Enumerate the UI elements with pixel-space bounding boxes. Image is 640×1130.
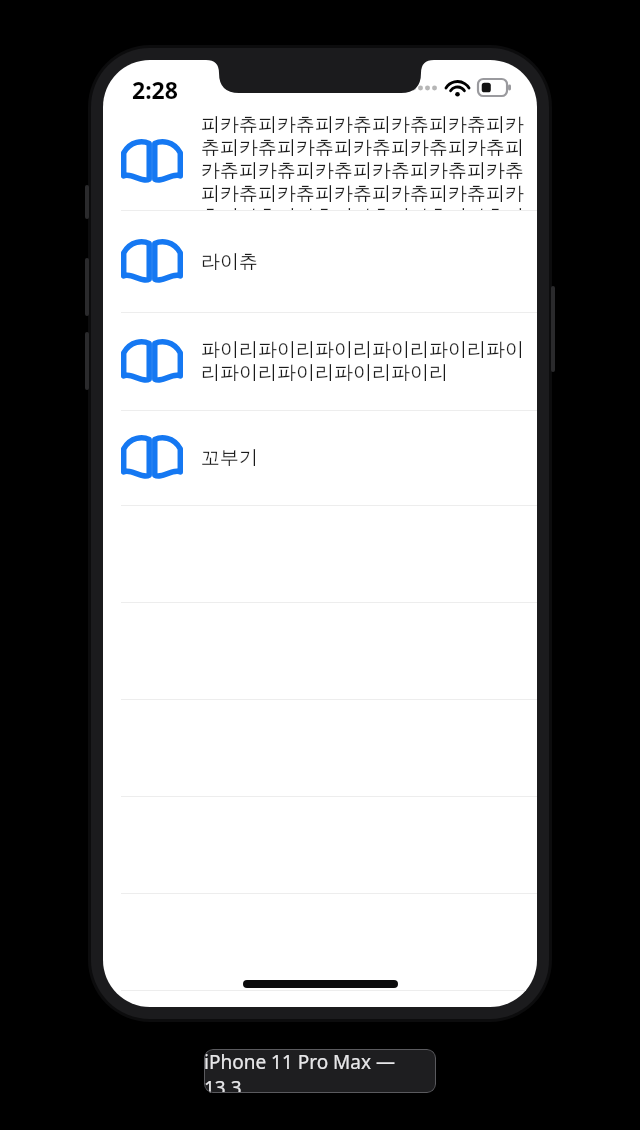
button[interactable]: iPhone 11 Pro Max — 13.3 — [204, 1049, 436, 1093]
staticText: 라이츄 — [201, 250, 535, 274]
other: Book — [121, 136, 183, 188]
other: Book — [121, 432, 183, 484]
staticText: iPhone 11 Pro Max — 13.3 — [204, 1049, 436, 1093]
staticText: 꼬부기 — [201, 446, 535, 470]
button[interactable]: Book — [103, 313, 537, 411]
button[interactable]: Book — [103, 113, 537, 211]
other: Book — [121, 336, 183, 388]
staticText: 피카츄피카츄피카츄피카츄피카츄피카츄피카츄피카츄피카츄피카츄피카츄피카츄피카츄피… — [201, 113, 535, 210]
button[interactable]: Book — [103, 411, 537, 506]
button[interactable] — [103, 894, 537, 991]
staticText: 파이리파이리파이리파이리파이리파이리파이리파이리파이리파이리 — [201, 338, 535, 385]
button[interactable]: Book — [103, 211, 537, 313]
other: Book — [121, 236, 183, 288]
staticText: 2:28 — [132, 74, 178, 100]
